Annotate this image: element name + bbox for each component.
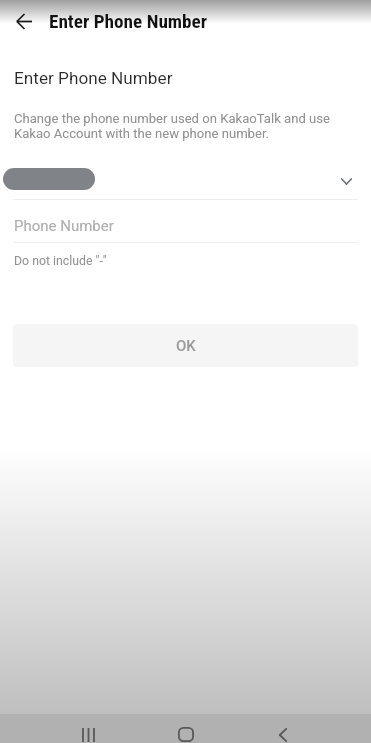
button[interactable]: Select country code — [0, 160, 371, 200]
staticText: Phone Number — [14, 217, 114, 235]
staticText: Enter Phone Number — [49, 10, 208, 33]
staticText: Do not include "-" — [14, 254, 107, 268]
staticText: Change the phone number used on KakaoTal… — [14, 111, 330, 142]
button[interactable]: Recent apps — [64, 714, 112, 743]
staticText: Enter Phone Number — [14, 68, 173, 88]
button[interactable]: Home — [162, 714, 210, 743]
button[interactable]: Back — [259, 714, 307, 743]
button[interactable]: OK — [13, 324, 358, 367]
button[interactable]: Navigate up — [2, 3, 46, 39]
button[interactable]: Phone Number — [13, 205, 358, 242]
staticText: OK — [176, 337, 196, 355]
